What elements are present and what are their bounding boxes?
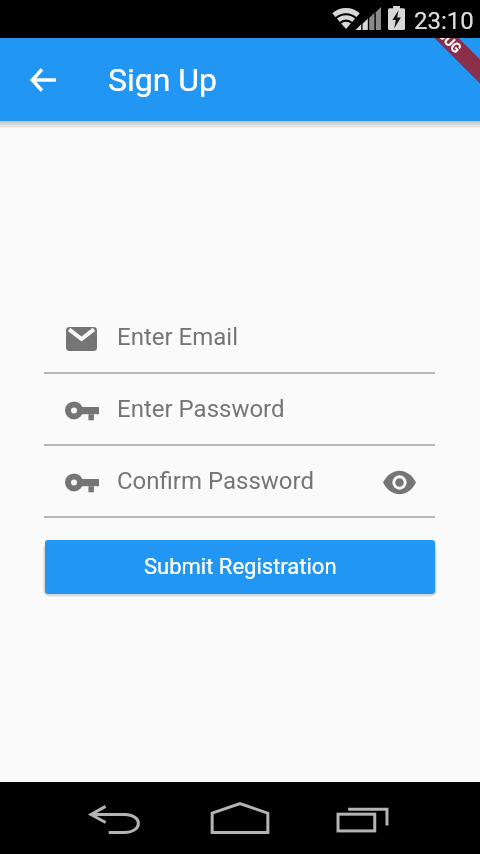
button[interactable]: Back: [87, 790, 145, 846]
button[interactable]: Recent apps: [336, 790, 388, 846]
staticText: 23:10: [414, 7, 474, 35]
staticText: DEBUG: [423, 15, 465, 56]
button[interactable]: Back: [19, 56, 67, 104]
staticText: Sign Up: [108, 61, 218, 99]
staticText: Enter Email: [117, 323, 238, 351]
button[interactable]: Show password: [376, 459, 422, 505]
staticText: Confirm Password: [117, 467, 315, 495]
staticText: Enter Password: [117, 395, 285, 423]
staticText: Submit Registration: [144, 554, 337, 580]
button[interactable]: Submit Registration: [45, 540, 435, 594]
button[interactable]: Home: [211, 790, 269, 846]
